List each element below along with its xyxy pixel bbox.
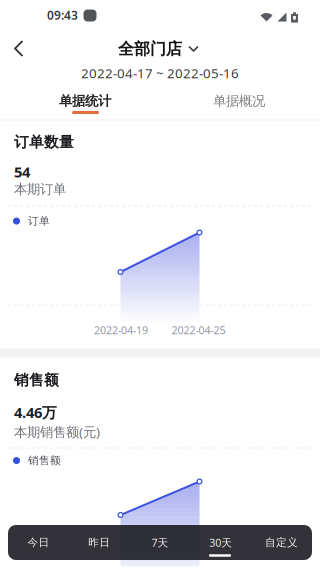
staticText: 订单 (28, 214, 50, 228)
staticText: 销售额 (28, 454, 61, 467)
button[interactable]: Back (3, 33, 33, 63)
button[interactable]: 今日 (8, 525, 69, 560)
button[interactable]: 昨日 (69, 525, 130, 560)
staticText: 2022-04-17 ~ 2022-05-16 (81, 64, 239, 82)
button[interactable]: 单据概况 (159, 87, 319, 115)
staticText: 销售额 (14, 371, 59, 389)
button[interactable]: 全部门店 (118, 39, 198, 59)
staticText: 自定义 (265, 536, 298, 549)
button[interactable]: 7天 (130, 525, 190, 560)
button[interactable]: 自定义 (251, 525, 312, 560)
staticText: 单据统计 (59, 93, 111, 109)
staticText: 4.46万 (14, 402, 57, 422)
staticText: 本期销售额(元) (14, 423, 100, 441)
staticText: 30天 (209, 535, 232, 550)
staticText: 2022-04-19 (94, 323, 148, 337)
staticText: 订单数量 (14, 133, 74, 151)
staticText: 2022-04-25 (171, 323, 225, 337)
staticText: 全部门店 (118, 39, 182, 59)
button[interactable]: 30天 (190, 525, 251, 560)
staticText: 54 (14, 162, 30, 181)
staticText: 09:43 (47, 7, 78, 23)
button[interactable]: 单据统计 (5, 87, 165, 115)
staticText: 7天 (151, 535, 168, 550)
staticText: 昨日 (88, 536, 110, 549)
staticText: 本期订单 (14, 181, 66, 197)
staticText: 单据概况 (213, 93, 265, 109)
staticText: 今日 (27, 536, 49, 549)
